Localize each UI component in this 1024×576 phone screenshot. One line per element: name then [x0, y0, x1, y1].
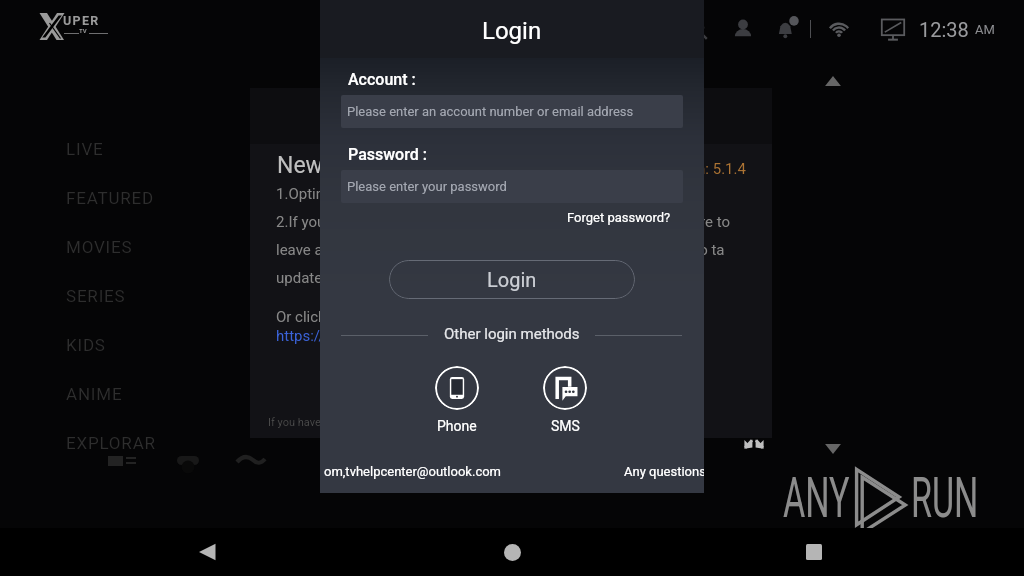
staticText: MOVIES — [66, 237, 133, 257]
button[interactable]: SERIES — [66, 271, 246, 320]
staticText: leave a message for us at any time, and … — [276, 241, 725, 259]
staticText: 1.Optimize the playback experience and f… — [276, 185, 686, 203]
staticText: Password : — [348, 145, 427, 164]
button[interactable]: MOVIES — [66, 222, 246, 271]
button[interactable]: Forget password? — [566, 208, 672, 227]
button[interactable]: EXPLORAR — [66, 418, 246, 467]
button[interactable]: ANIME — [66, 369, 246, 418]
staticText: Please enter your password — [347, 179, 507, 194]
staticText: UPER — [63, 13, 100, 28]
button[interactable]: Search — [683, 15, 711, 43]
staticText: TV — [79, 27, 87, 34]
staticText: SMS — [551, 418, 580, 434]
staticText: FEATURED — [66, 188, 154, 208]
button[interactable]: FEATURED — [66, 173, 246, 222]
button[interactable]: SMS — [543, 366, 587, 434]
staticText: Current version: 5.1.4 — [604, 160, 746, 178]
staticText: ANY — [783, 466, 850, 530]
button[interactable]: Account — [729, 15, 757, 43]
staticText: If you have any questions, please contac… — [268, 416, 596, 429]
button[interactable]: Back — [183, 528, 231, 576]
staticText: Account : — [348, 70, 416, 89]
staticText: RUN — [911, 466, 979, 530]
button[interactable]: Please enter an account number or email … — [341, 95, 683, 128]
staticText: Phone — [437, 418, 477, 434]
staticText: 12:38 — [919, 18, 969, 41]
button[interactable]: KIDS — [66, 320, 246, 369]
button[interactable]: Home — [488, 528, 536, 576]
button[interactable]: Phone — [435, 366, 479, 434]
staticText: ANIME — [66, 384, 123, 404]
staticText: New Version — [277, 152, 407, 179]
staticText: https://www.xupertv.com — [276, 327, 444, 345]
staticText: Login — [487, 268, 537, 291]
staticText: KIDS — [66, 335, 106, 355]
staticText: om,tvhelpcenter@outlook.com — [324, 464, 501, 479]
staticText: 2.If you have any questions during the u… — [276, 213, 731, 231]
staticText: Other login methods — [444, 325, 580, 343]
staticText: update now — [276, 269, 355, 287]
button[interactable]: Login — [389, 260, 635, 299]
staticText: EXPLORAR — [66, 433, 156, 453]
button[interactable]: Recent apps — [790, 528, 838, 576]
staticText: SERIES — [66, 286, 126, 306]
button[interactable]: Notifications — [773, 15, 801, 43]
staticText: Or click — [276, 308, 326, 326]
staticText: Login — [482, 17, 542, 45]
button[interactable]: LIVE — [66, 124, 246, 173]
staticText: Any questions, feel free to contact us — [624, 464, 704, 479]
staticText: Please enter an account number or email … — [347, 104, 634, 119]
staticText: AM — [975, 22, 995, 37]
button[interactable]: Please enter your password — [341, 170, 683, 203]
staticText: LIVE — [66, 139, 104, 159]
staticText: Forget password? — [567, 210, 671, 225]
